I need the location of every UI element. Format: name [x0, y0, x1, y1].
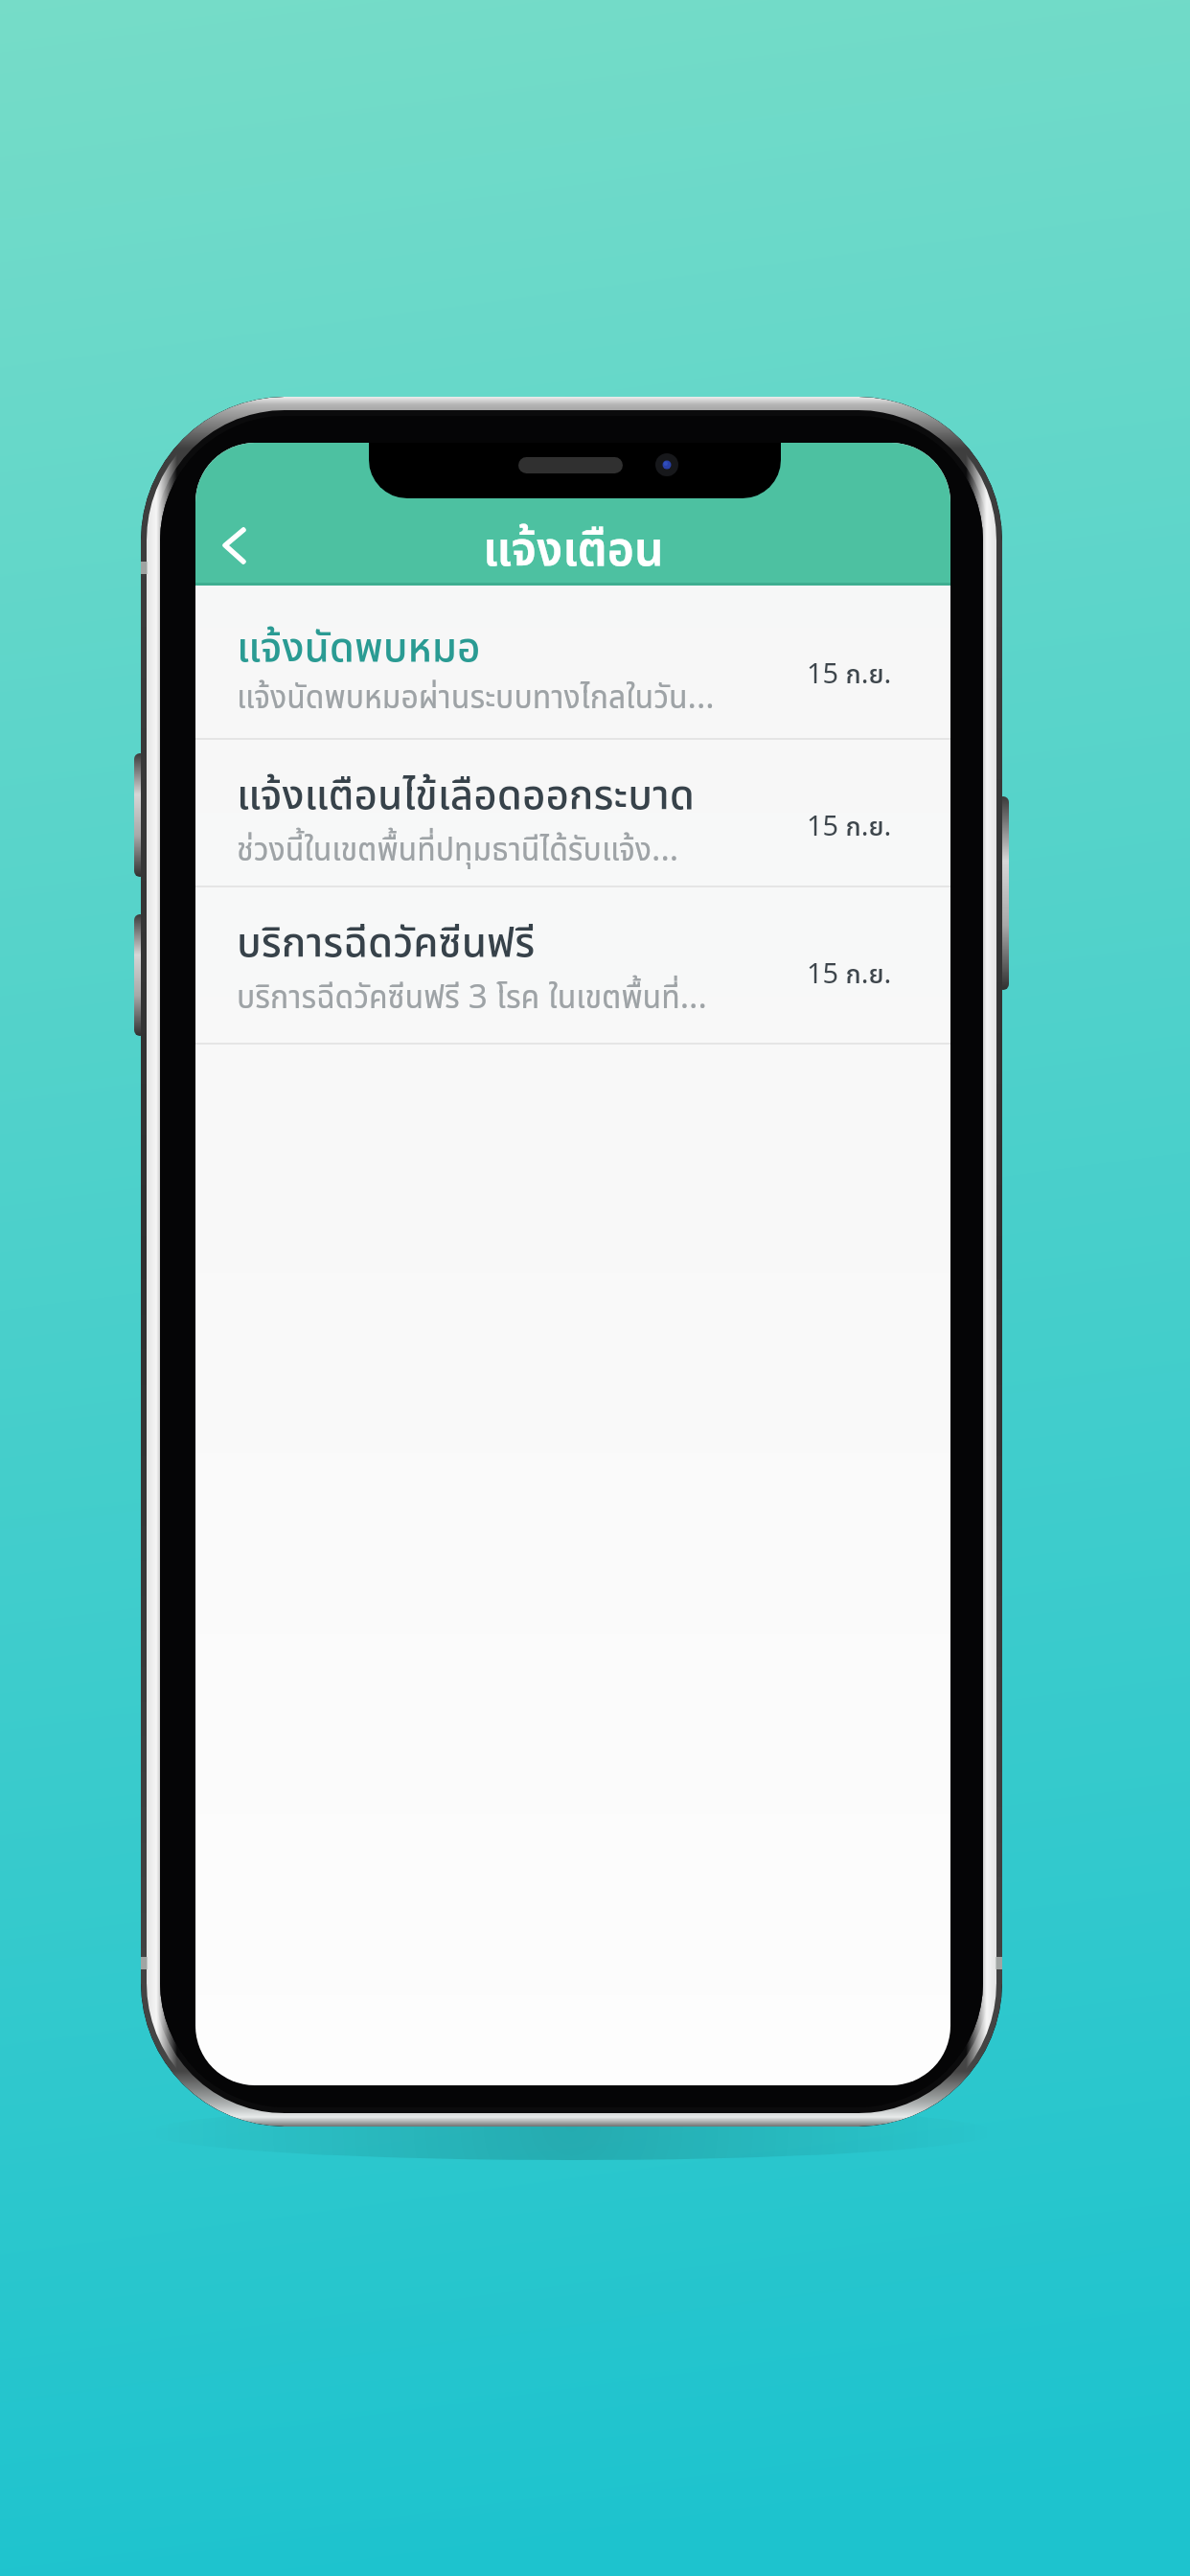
staticText: ช่วงนี้ในเขตพื้นที่ปทุมธานีได้รับแจ้ง... [237, 825, 679, 871]
button[interactable]: แจ้งนัดพบหมอ [195, 586, 950, 738]
staticText: 15 ก.ย. [807, 806, 892, 843]
button[interactable] [205, 515, 272, 582]
staticText: บริการฉีดวัคซีนฟรี [237, 910, 536, 971]
staticText: 15 ก.ย. [807, 654, 892, 691]
staticText: บริการฉีดวัคซีนฟรี 3 โรค ในเขตพื้นที่... [237, 973, 707, 1019]
button[interactable]: บริการฉีดวัคซีนฟรี [195, 885, 950, 1043]
staticText: แจ้งนัดพบหมอผ่านระบบทางไกลในวัน... [237, 673, 715, 719]
staticText: 15 ก.ย. [807, 954, 892, 991]
staticText: แจ้งเตือน [483, 512, 664, 575]
staticText: แจ้งนัดพบหมอ [237, 615, 481, 676]
button[interactable]: แจ้งแตือนไข้เลือดออกระบาด [195, 738, 950, 885]
staticText: แจ้งแตือนไข้เลือดออกระบาด [237, 763, 696, 823]
